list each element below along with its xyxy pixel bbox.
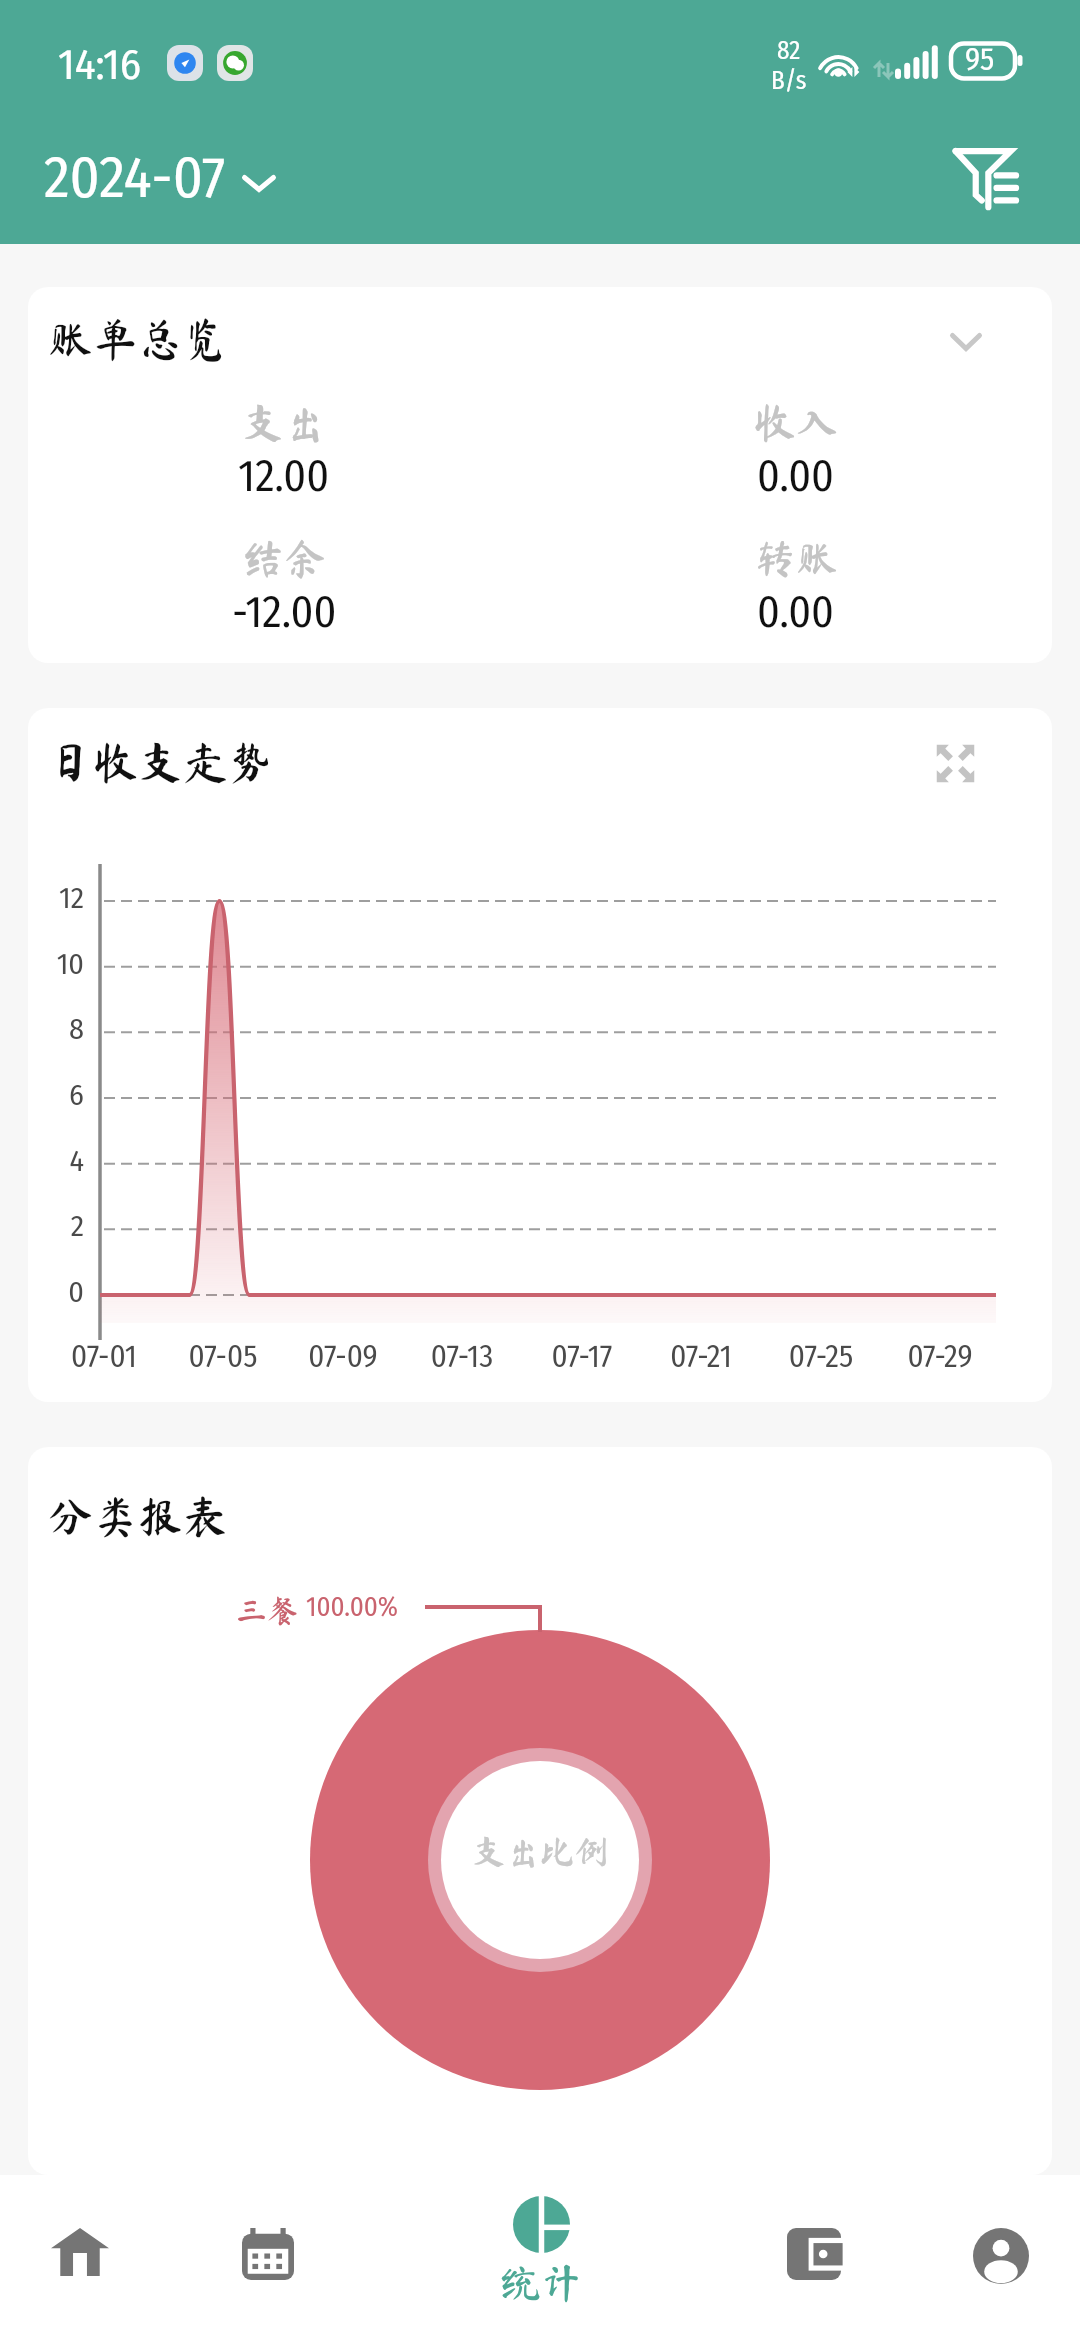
staticText: 82 [777, 36, 801, 66]
staticText: 4 [38, 1143, 84, 1179]
staticText: 0.00 [757, 586, 835, 639]
staticText: 07-05 [153, 1338, 293, 1375]
staticText: 支出比例 [28, 1834, 1052, 1868]
staticText: 95 [965, 41, 995, 78]
staticText: 07-13 [392, 1338, 532, 1375]
staticText: 07-09 [273, 1338, 413, 1375]
staticText: 8 [38, 1011, 84, 1047]
staticText: 0.00 [757, 450, 835, 503]
staticText: 转账 [754, 537, 839, 579]
staticText: 2 [38, 1208, 84, 1244]
staticText: 14:16 [58, 39, 142, 91]
staticText: B/s [771, 66, 807, 96]
staticText: 07-29 [870, 1338, 1010, 1375]
button[interactable]: Calendar [168, 2175, 368, 2331]
button[interactable]: Wallet [714, 2175, 914, 2331]
staticText: 结余 [242, 537, 327, 579]
staticText: 10 [38, 946, 84, 982]
staticText: 12.00 [238, 450, 330, 503]
staticText: 分类报表 [48, 1493, 229, 1538]
staticText: 统计 [500, 2262, 582, 2303]
staticText: 6 [38, 1077, 84, 1113]
staticText: -12.00 [232, 586, 337, 639]
button[interactable]: Profile [914, 2175, 1080, 2331]
button[interactable]: Collapse overview [928, 304, 1004, 380]
staticText: 日收支走势 [48, 739, 274, 784]
button[interactable]: Filter [935, 128, 1035, 228]
button[interactable]: 统计 [441, 2175, 641, 2331]
staticText: 2024-07 [44, 143, 226, 213]
staticText: 07-21 [631, 1338, 771, 1375]
staticText: 三餐 [236, 1595, 298, 1626]
staticText: 100.00% [306, 1591, 399, 1623]
staticText: 0 [38, 1274, 84, 1310]
staticText: 07-17 [512, 1338, 652, 1375]
staticText: 07-25 [751, 1338, 891, 1375]
staticText: 07-01 [34, 1338, 174, 1375]
staticText: 12 [38, 880, 84, 916]
button[interactable]: Home [0, 2175, 160, 2331]
staticText: 支出 [242, 401, 327, 443]
staticText: 账单总览 [48, 316, 229, 361]
staticText: 收入 [754, 401, 839, 443]
button[interactable]: 2024-07 [38, 129, 282, 227]
button[interactable]: Fullscreen [917, 725, 993, 801]
